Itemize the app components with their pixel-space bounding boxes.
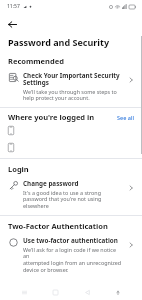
button[interactable]: Use two-factor authentication [0, 235, 142, 276]
button[interactable]: Change password [0, 178, 142, 212]
staticText: Login [8, 164, 29, 174]
staticText: We'll take you through some steps to hel… [23, 88, 117, 102]
button[interactable] [0, 126, 142, 135]
button[interactable]: Hide keyboard [110, 285, 126, 300]
button[interactable]: Back [79, 285, 95, 300]
staticText: We'll ask for a login code if we notice … [23, 246, 123, 274]
button[interactable]: Back [4, 16, 20, 32]
staticText: See all [117, 114, 134, 121]
button[interactable]: See all [116, 113, 135, 122]
staticText: It's a good idea to use a strong passwor… [23, 189, 102, 210]
staticText: Where you're logged in [8, 112, 116, 122]
staticText: Use two-factor authentication [23, 236, 118, 245]
staticText: Change password [23, 179, 79, 188]
button[interactable] [0, 143, 142, 152]
staticText: Password and Security [8, 36, 110, 48]
staticText: 11:57 [7, 3, 20, 10]
staticText: Recommended [8, 56, 64, 66]
staticText: Two-Factor Authentication [8, 221, 108, 231]
button[interactable]: Recent apps [16, 285, 32, 300]
button[interactable]: Check Your Important Security Settings [0, 70, 142, 104]
button[interactable]: Home [47, 285, 63, 300]
staticText: Check Your Important Security Settings [23, 71, 120, 87]
